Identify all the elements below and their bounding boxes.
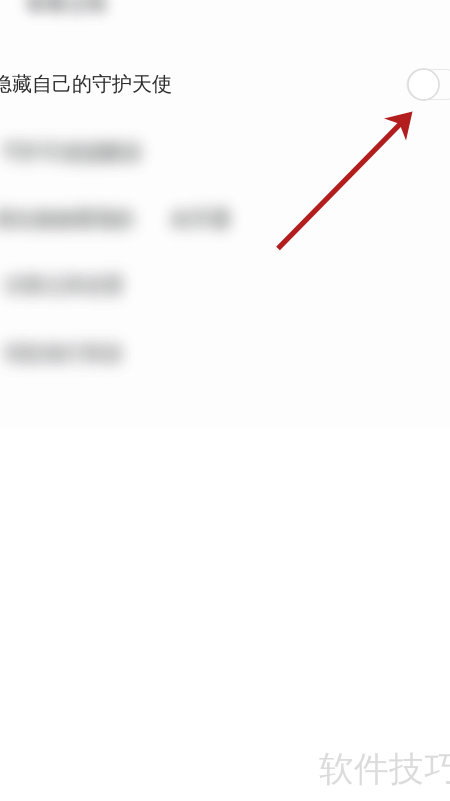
button[interactable]: 隐藏自己的守护天使: [407, 69, 450, 100]
button[interactable]: 隐藏自己的守护天使: [0, 53, 450, 115]
staticText: 软件技巧: [319, 748, 450, 791]
staticText: 隐藏自己的守护天使: [0, 72, 172, 96]
